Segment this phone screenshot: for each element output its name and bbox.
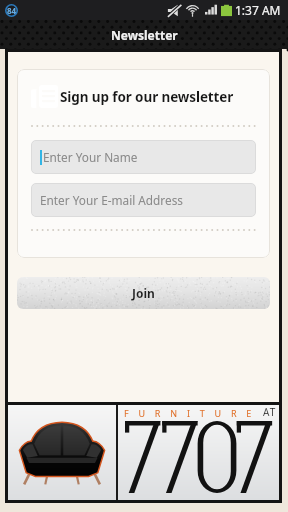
staticText: Enter Your Name xyxy=(43,149,138,165)
staticText: Newsletter xyxy=(111,27,178,43)
staticText: FURNITURE xyxy=(124,407,262,419)
staticText: AT xyxy=(263,405,277,419)
staticText: Join xyxy=(132,285,155,301)
staticText: Sign up for our newsletter xyxy=(60,88,234,106)
button[interactable]: Join xyxy=(17,277,270,309)
staticText: 84 xyxy=(7,5,17,16)
button[interactable]: Enter Your E-mail Address xyxy=(31,183,256,217)
staticText: 1:37 AM xyxy=(235,2,281,18)
staticText: Enter Your E-mail Address xyxy=(40,192,183,208)
button[interactable]: Enter Your Name xyxy=(31,140,256,174)
button[interactable]: Furniture at 7707 xyxy=(8,405,279,500)
